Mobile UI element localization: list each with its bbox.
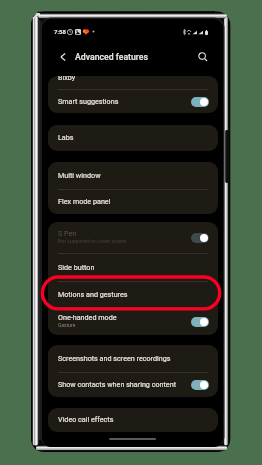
button[interactable]: Show contacts when sharing content	[48, 373, 218, 397]
staticText: Flex mode panel	[58, 197, 111, 205]
staticText: Multi window	[58, 171, 101, 179]
staticText: Bixby	[58, 76, 76, 81]
staticText: Smart suggestions	[58, 97, 119, 105]
button[interactable]: Search	[194, 48, 212, 66]
staticText: One-handed mode	[58, 313, 117, 321]
staticText: Show contacts when sharing content	[58, 380, 176, 388]
button[interactable]: Smart suggestions toggle	[191, 97, 209, 107]
button[interactable]: S Pen	[48, 222, 218, 253]
button[interactable]: Screenshots and screen recordings	[48, 345, 218, 372]
staticText: Motions and gestures	[58, 290, 128, 298]
button[interactable]: Side button	[48, 254, 218, 281]
button[interactable]: Bixby	[48, 76, 218, 89]
staticText: 7:58	[54, 28, 66, 35]
button[interactable]: One-handed mode	[48, 308, 218, 335]
staticText: Labs	[58, 133, 74, 141]
staticText: Video call effects	[58, 415, 114, 423]
button[interactable]: Back	[54, 48, 72, 66]
button[interactable]: Labs	[48, 125, 218, 151]
staticText: Side button	[58, 263, 95, 271]
button[interactable]: Show contacts when sharing content toggl…	[191, 380, 209, 390]
staticText: Advanced features	[75, 52, 148, 62]
staticText: S Pen	[58, 229, 77, 237]
staticText: Not supported on cover screen	[58, 238, 127, 244]
button[interactable]: Video call effects	[48, 408, 218, 432]
button[interactable]: S Pen toggle	[191, 233, 209, 243]
staticText: Screenshots and screen recordings	[58, 354, 171, 362]
button[interactable]: Motions and gestures	[48, 282, 218, 307]
button[interactable]: One-handed mode toggle	[191, 317, 209, 327]
button[interactable]: Multi window	[48, 162, 218, 189]
button[interactable]: Flex mode panel	[48, 190, 218, 214]
button[interactable]: Smart suggestions	[48, 90, 218, 113]
staticText: Gesture	[58, 322, 76, 328]
